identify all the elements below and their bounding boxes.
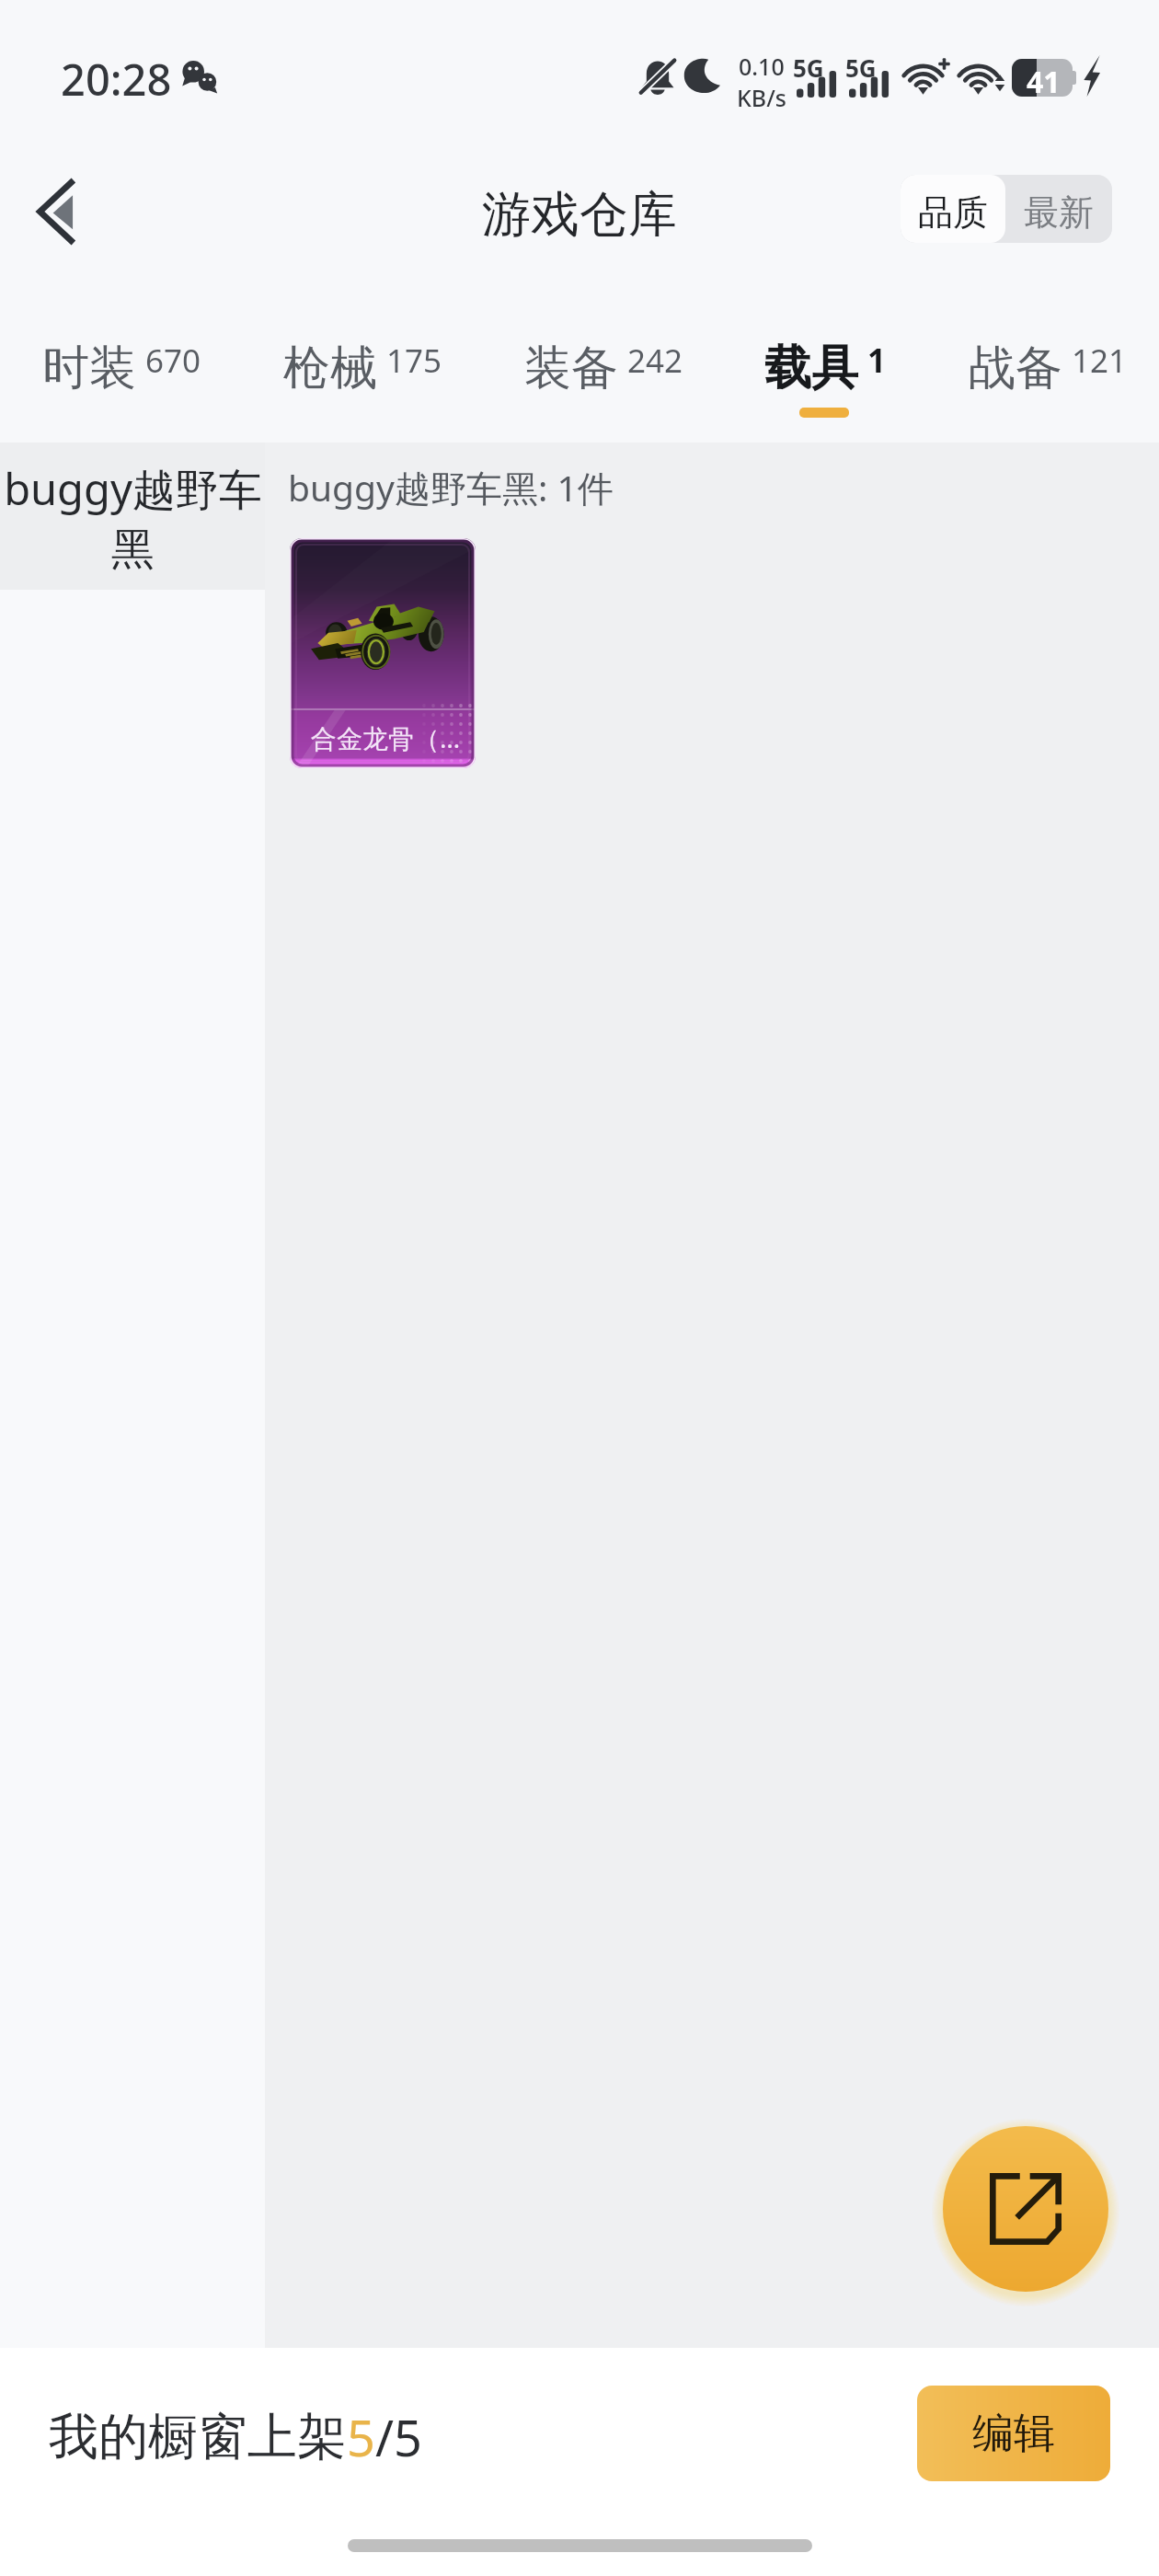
staticText: 5G xyxy=(845,52,877,84)
staticText: 242 xyxy=(627,339,683,383)
button[interactable]: 合金龙骨（… xyxy=(290,538,476,768)
button[interactable]: 载具 xyxy=(764,304,887,443)
button[interactable]: 时装 xyxy=(42,304,201,443)
button[interactable]: buggy越野车 黑 xyxy=(0,443,265,590)
staticText: 20:28 xyxy=(61,50,172,109)
staticText: 载具 xyxy=(764,339,858,397)
staticText: 0.10 xyxy=(739,51,785,82)
staticText: /5 xyxy=(375,2403,422,2471)
staticText: 41 xyxy=(1027,62,1061,99)
staticText: 121 xyxy=(1072,339,1128,383)
staticText: 5 xyxy=(347,2403,375,2471)
staticText: 战备 xyxy=(969,339,1062,397)
staticText: buggy越野车 黑 xyxy=(4,459,262,577)
button[interactable]: 枪械 xyxy=(283,304,442,443)
staticText: buggy越野车黑: 1件 xyxy=(288,463,614,512)
staticText: 最新 xyxy=(1024,190,1094,235)
staticText: 时装 xyxy=(42,339,136,397)
button[interactable]: Open external link xyxy=(943,2126,1108,2292)
button[interactable]: 品质 xyxy=(901,175,1005,243)
button[interactable]: 战备 xyxy=(969,304,1128,443)
staticText: 枪械 xyxy=(283,339,377,397)
staticText: 合金龙骨（… xyxy=(311,720,461,755)
staticText: 品质 xyxy=(918,190,988,235)
staticText: 编辑 xyxy=(972,2408,1055,2460)
staticText: 我的橱窗上架 xyxy=(49,2406,347,2468)
staticText: 装备 xyxy=(524,339,618,397)
staticText: 游戏仓库 xyxy=(482,184,677,246)
button[interactable]: 编辑 xyxy=(917,2386,1110,2481)
staticText: 5G xyxy=(793,52,824,84)
staticText: 175 xyxy=(386,339,442,383)
button[interactable]: Back xyxy=(10,136,102,304)
button[interactable]: 装备 xyxy=(524,304,683,443)
staticText: 670 xyxy=(145,339,201,383)
button[interactable]: 最新 xyxy=(1005,175,1112,243)
staticText: 1 xyxy=(867,339,887,383)
staticText: KB/s xyxy=(737,82,786,113)
